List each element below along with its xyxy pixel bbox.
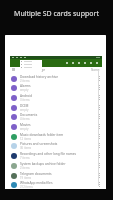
staticText: empty [20,88,29,92]
staticText: Multiple SD cards support [0,9,113,19]
button[interactable]: Alarms [10,83,102,92]
staticText: 2 items [20,79,30,83]
button[interactable]: Toolbar action [5,35,106,189]
staticText: Music downloads folder item [20,133,64,137]
button[interactable]: System backups archive folder [10,161,102,170]
staticText: System backups archive folder [20,162,66,166]
button[interactable]: More options [96,180,102,189]
staticText: 19 items [20,176,32,180]
button[interactable]: Android [10,93,102,102]
staticText: DCIM [20,104,29,108]
button[interactable]: DCIM [10,103,102,112]
staticText: empty [20,108,29,112]
staticText: empty [20,127,29,131]
button[interactable]: More options [96,151,102,160]
button[interactable]: More options [96,122,102,131]
staticText: Documents [20,113,38,117]
button[interactable]: Pictures and screenshots [10,141,102,150]
staticText: 7 items [20,156,30,160]
staticText: Name [91,68,100,72]
staticText: Android [20,94,32,98]
button[interactable]: Music downloads folder item [10,132,102,141]
button[interactable]: Movies [10,122,102,131]
button[interactable]: More options [96,132,102,141]
button[interactable]: More options [96,161,102,170]
staticText: 4 items [20,117,30,121]
staticText: Alarms [20,84,31,88]
staticText: Movies [20,123,31,127]
button[interactable]: WhatsApp media files [10,180,102,189]
button[interactable]: More options [96,112,102,121]
button[interactable]: More options [96,93,102,102]
staticText: 2 items [20,166,30,170]
staticText: 3 items [20,98,30,102]
staticText: Pictures and screenshots [20,142,58,146]
staticText: 212 items [20,185,33,189]
staticText: Telegram documents [20,172,52,176]
button[interactable]: More options [96,74,102,83]
button[interactable]: Internal storage [10,66,102,73]
button[interactable]: Documents [10,112,102,121]
staticText: 12 items [20,137,32,141]
button[interactable]: Download history archive [10,74,102,83]
button[interactable] [20,60,42,71]
staticText: Download history archive [20,75,58,79]
button[interactable]: More options [96,171,102,180]
staticText: 36 items [20,146,32,150]
staticText: Internal storage [21,68,46,72]
staticText: WhatsApp media files [20,181,53,185]
staticText: Recordings and other long file names [20,152,77,156]
button[interactable]: Telegram documents [10,171,102,180]
button[interactable]: More options [96,83,102,92]
button[interactable]: More options [96,141,102,150]
button[interactable]: More options [96,103,102,112]
button[interactable]: Recordings and other long file names [10,151,102,160]
